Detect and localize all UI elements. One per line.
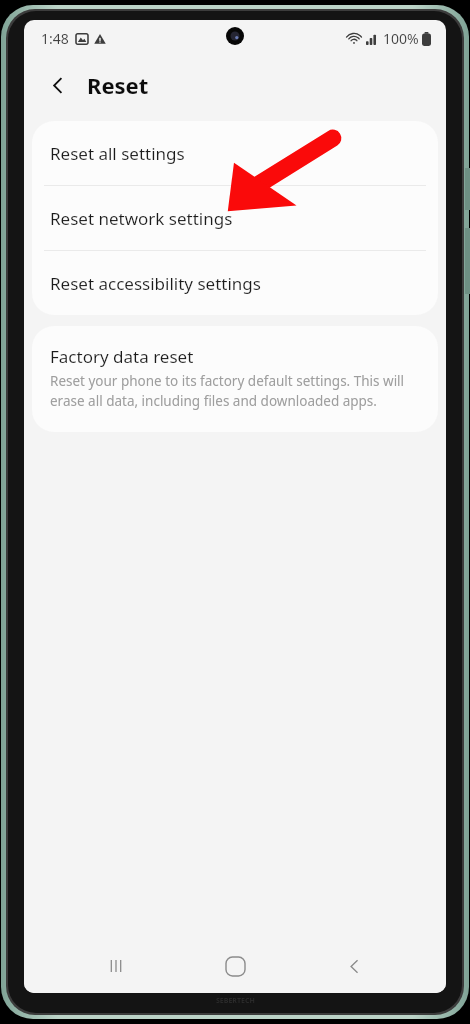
staticText: Reset network settings: [50, 207, 233, 230]
button[interactable]: Reset network settings: [32, 186, 438, 250]
staticText: SEBERTECH: [216, 996, 255, 1006]
button[interactable]: Back: [327, 939, 381, 993]
staticText: Reset your phone to its factory default …: [50, 372, 422, 410]
staticText: Reset accessibility settings: [50, 272, 261, 295]
button[interactable]: Reset accessibility settings: [32, 251, 438, 315]
button[interactable]: Reset all settings: [32, 121, 438, 185]
button[interactable]: Recent apps: [89, 939, 143, 993]
button[interactable]: Home: [208, 939, 262, 993]
staticText: 1:48: [41, 29, 69, 48]
staticText: Reset all settings: [50, 142, 185, 165]
staticText: 100%: [383, 29, 419, 48]
staticText: Reset: [87, 70, 149, 100]
staticText: Factory data reset: [50, 345, 194, 368]
button[interactable]: Factory data reset: [32, 326, 438, 432]
button[interactable]: Back: [37, 64, 79, 106]
